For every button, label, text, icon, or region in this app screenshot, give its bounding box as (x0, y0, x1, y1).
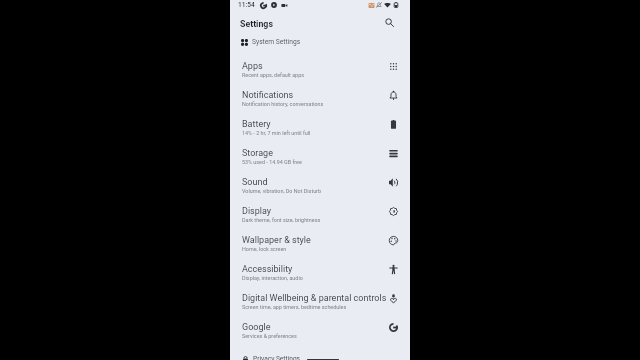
staticText: Dark theme, font size, brightness (242, 217, 321, 223)
button[interactable]: Storage (230, 142, 410, 171)
staticText: Apps (242, 61, 263, 72)
staticText: 11:54 (238, 1, 255, 9)
staticText: Privacy Settings (253, 355, 301, 360)
button[interactable]: Digital Wellbeing & parental controls (230, 287, 410, 316)
staticText: Volume, vibration, Do Not Disturb (242, 188, 321, 194)
staticText: Screen time, app timers, bedtime schedul… (242, 304, 347, 310)
staticText: 14% - 2 hr, 7 min left until full (242, 130, 311, 136)
staticText: Home, lock screen (242, 246, 287, 252)
staticText: Storage (242, 148, 273, 159)
button[interactable]: Google (230, 316, 410, 345)
staticText: Battery (242, 119, 271, 130)
staticText: Google (242, 322, 271, 333)
staticText: Notifications (242, 90, 294, 101)
staticText: 53% used - 14.94 GB free (242, 159, 302, 165)
staticText: Digital Wellbeing & parental controls (242, 293, 387, 304)
button[interactable]: Display (230, 200, 410, 229)
button[interactable]: System Settings (230, 35, 410, 49)
button[interactable]: Search (382, 15, 396, 29)
staticText: Services & preferences (242, 333, 297, 339)
staticText: Notification history, conversations (242, 101, 324, 107)
button[interactable]: Accessibility (230, 258, 410, 287)
staticText: System Settings (252, 38, 301, 46)
staticText: Accessibility (242, 264, 293, 275)
button[interactable]: Sound (230, 171, 410, 200)
button[interactable]: Apps (230, 55, 410, 84)
staticText: Settings (240, 19, 273, 29)
staticText: Display (242, 206, 272, 217)
button[interactable]: Notifications (230, 84, 410, 113)
button[interactable]: Battery (230, 113, 410, 142)
staticText: Recent apps, default apps (242, 72, 304, 78)
staticText: Wallpaper & style (242, 235, 311, 246)
staticText: Sound (242, 177, 268, 188)
staticText: Display, interaction, audio (242, 275, 303, 281)
button[interactable]: Wallpaper & style (230, 229, 410, 258)
